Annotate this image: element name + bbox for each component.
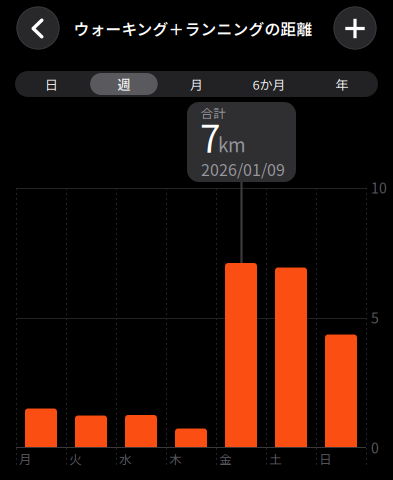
button[interactable]: 週 xyxy=(88,71,160,97)
staticText: ウォーキング＋ランニングの距離 xyxy=(73,17,312,40)
button[interactable]: 月 xyxy=(160,71,233,97)
staticText: km xyxy=(218,130,246,158)
staticText: 0 xyxy=(371,437,379,458)
staticText: 金 xyxy=(219,449,232,468)
staticText: 7 xyxy=(200,110,221,163)
button[interactable]: 年 xyxy=(305,71,378,97)
staticText: 10 xyxy=(371,177,387,198)
staticText: 6か月 xyxy=(253,75,286,93)
staticText: 2026/01/09 xyxy=(201,157,285,181)
staticText: 5 xyxy=(371,307,379,328)
staticText: 土 xyxy=(269,449,282,468)
staticText: 水 xyxy=(119,449,132,468)
button[interactable]: 戻る xyxy=(16,6,59,49)
staticText: 火 xyxy=(69,449,82,468)
staticText: 日 xyxy=(319,449,332,468)
button[interactable]: 日 xyxy=(15,71,88,97)
staticText: 合計 xyxy=(200,103,226,122)
staticText: 木 xyxy=(169,449,182,468)
staticText: 日 xyxy=(45,75,58,93)
staticText: 月 xyxy=(19,449,32,468)
staticText: 週 xyxy=(117,75,130,93)
button[interactable]: 6か月 xyxy=(233,71,305,97)
button[interactable]: 追加 xyxy=(333,6,376,49)
staticText: 月 xyxy=(190,75,203,93)
staticText: 年 xyxy=(335,75,348,93)
